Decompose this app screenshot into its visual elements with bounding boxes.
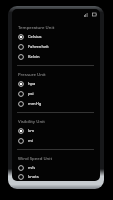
button[interactable]: psi: [17, 89, 96, 99]
staticText: km: [28, 128, 35, 134]
staticText: Celsius: [28, 34, 42, 40]
staticText: mi: [28, 138, 33, 144]
button[interactable]: Kelvin: [17, 52, 96, 62]
staticText: knots: [28, 174, 39, 180]
other: Status indicators: [84, 12, 97, 17]
button[interactable]: mmHg: [17, 99, 96, 109]
staticText: Visibility Unit: [18, 118, 45, 124]
button[interactable]: hpa: [17, 79, 96, 89]
staticText: Fahrenheit: [28, 44, 49, 50]
button[interactable]: Fahrenheit: [17, 42, 96, 52]
staticText: Kelvin: [28, 54, 40, 60]
button[interactable]: Celsius: [17, 32, 96, 42]
staticText: psi: [28, 91, 34, 97]
staticText: Wind Speed Unit: [18, 155, 53, 161]
staticText: mmHg: [28, 101, 42, 107]
button[interactable]: knots: [17, 173, 96, 181]
staticText: hpa: [28, 81, 36, 87]
staticText: Temperature Unit: [18, 24, 55, 30]
staticText: m/s: [28, 165, 36, 171]
button[interactable]: mi: [17, 136, 96, 146]
staticText: Pressure Unit: [18, 71, 46, 77]
button[interactable]: m/s: [17, 163, 96, 173]
button[interactable]: km: [17, 126, 96, 136]
